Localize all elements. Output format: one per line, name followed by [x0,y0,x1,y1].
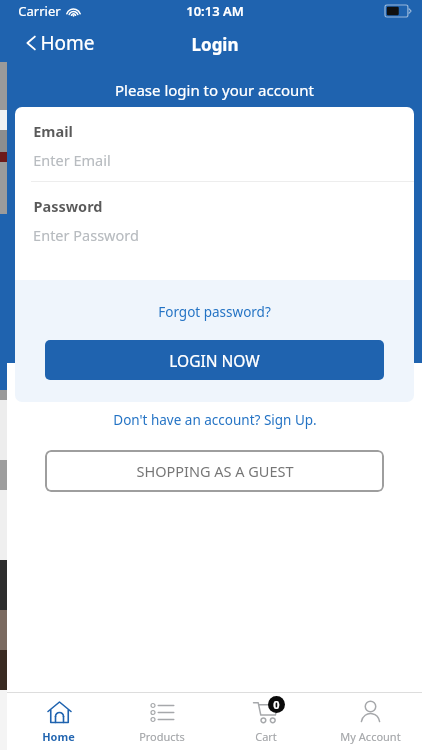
other: Back [25,33,37,53]
staticText: Home [40,30,95,56]
button[interactable]: SHOPPING AS A GUEST [45,450,384,492]
staticText: Login [191,33,239,56]
button[interactable]: Don't have an account? Sign Up. [109,407,321,433]
staticText: Password [33,196,103,216]
button[interactable]: Forgot password? [154,299,275,325]
button[interactable]: Home [7,695,110,748]
button[interactable]: Password [15,182,414,256]
staticText: Carrier [18,2,61,20]
staticText: 0 [273,697,280,712]
other: Home [47,700,72,725]
staticText: Enter Email [33,150,111,170]
staticText: Email [33,121,73,141]
button[interactable]: My Account [318,695,422,748]
button[interactable]: Email [15,107,414,181]
staticText: LOGIN NOW [169,350,260,371]
button[interactable]: LOGIN NOW [45,340,384,380]
staticText: 10:13 AM [186,2,244,20]
other: Products [150,700,175,725]
staticText: Please login to your account [115,80,314,100]
button[interactable]: Back [7,26,105,60]
staticText: Home [42,729,75,744]
button[interactable]: Cart [214,695,318,748]
staticText: SHOPPING AS A GUEST [136,461,294,481]
other: My Account [358,700,383,725]
button[interactable]: Products [110,695,214,748]
staticText: Products [139,729,185,744]
staticText: My Account [340,729,401,744]
staticText: Enter Password [33,225,139,245]
other: Cart [253,699,279,725]
staticText: Cart [255,729,277,744]
